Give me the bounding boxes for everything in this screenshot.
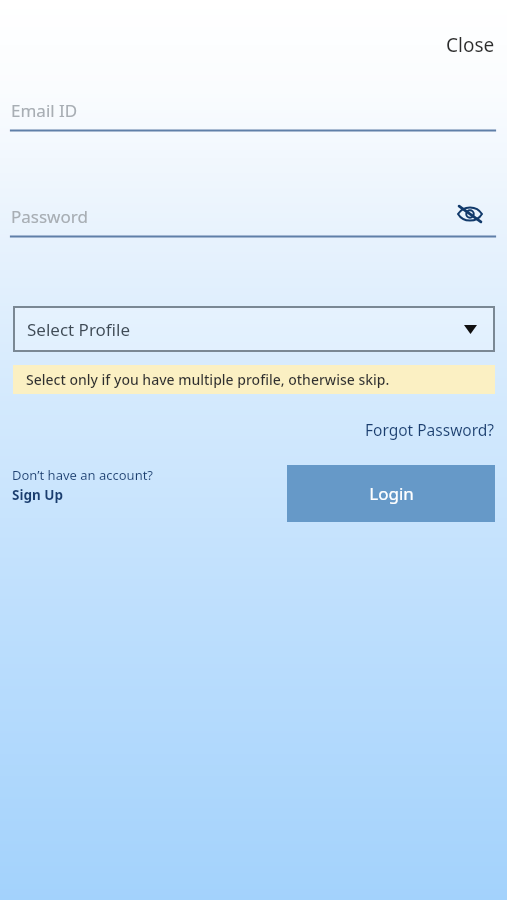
staticText: Email ID: [11, 99, 78, 122]
staticText: Select Profile: [27, 318, 131, 341]
button[interactable]: Close: [430, 29, 495, 61]
button[interactable]: Select Profile: [13, 306, 495, 352]
button[interactable]: Show password: [448, 194, 492, 234]
staticText: Password: [11, 205, 88, 228]
staticText: Select only if you have multiple profile…: [26, 370, 390, 389]
button[interactable]: Don’t have an account?: [12, 466, 197, 502]
staticText: Close: [446, 32, 495, 58]
staticText: Sign Up: [12, 486, 64, 504]
staticText: Don’t have an account?: [12, 466, 153, 484]
button[interactable]: Login: [287, 465, 495, 522]
button[interactable]: Forgot Password?: [330, 415, 495, 443]
staticText: Login: [369, 482, 414, 505]
button[interactable]: Email ID: [11, 88, 495, 132]
button[interactable]: Password: [11, 194, 495, 238]
staticText: Forgot Password?: [365, 419, 495, 440]
